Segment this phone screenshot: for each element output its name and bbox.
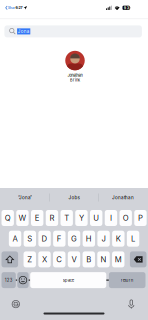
button[interactable]: D bbox=[38, 231, 51, 247]
staticText: D bbox=[42, 234, 48, 243]
staticText: R bbox=[49, 213, 54, 223]
staticText: Jona bbox=[18, 29, 30, 34]
button[interactable]: F bbox=[53, 231, 65, 247]
button[interactable]: W bbox=[16, 210, 29, 226]
button[interactable]: E bbox=[31, 210, 43, 226]
staticText: C bbox=[56, 255, 62, 264]
button[interactable]: Y bbox=[75, 210, 88, 226]
button[interactable]: N bbox=[97, 251, 110, 267]
button[interactable]: H bbox=[83, 231, 95, 247]
staticText: Jobs bbox=[68, 195, 79, 200]
staticText: G bbox=[71, 234, 77, 243]
staticText: N bbox=[100, 255, 106, 264]
button[interactable]: C bbox=[53, 251, 65, 267]
staticText: 123 bbox=[5, 277, 13, 283]
button[interactable]: A bbox=[9, 231, 21, 247]
staticText: 6:27 bbox=[15, 6, 22, 10]
button[interactable]: U bbox=[90, 210, 102, 226]
staticText: S bbox=[27, 234, 32, 243]
button[interactable]: G bbox=[68, 231, 80, 247]
button[interactable]: B bbox=[83, 251, 95, 267]
staticText: H bbox=[86, 234, 92, 243]
staticText: “Jona” bbox=[18, 195, 32, 200]
staticText: 93 bbox=[124, 5, 129, 10]
button[interactable]: Jonathan bbox=[53, 51, 97, 83]
staticText: Q bbox=[5, 213, 11, 223]
staticText: X bbox=[42, 255, 47, 264]
button[interactable]: R bbox=[46, 210, 58, 226]
button[interactable]: 123 bbox=[1, 272, 16, 288]
button[interactable]: I bbox=[105, 210, 117, 226]
button[interactable]: Q bbox=[1, 210, 14, 226]
staticText: Y bbox=[79, 213, 84, 223]
button[interactable]: J bbox=[97, 231, 110, 247]
button[interactable]: X bbox=[38, 251, 51, 267]
button[interactable]: Shar bbox=[5, 6, 15, 10]
button[interactable]: space bbox=[30, 272, 106, 288]
staticText: Brink bbox=[70, 78, 80, 83]
button[interactable]: “Jona” bbox=[1, 189, 49, 206]
button[interactable]: P bbox=[134, 210, 147, 226]
button[interactable]: V bbox=[68, 251, 80, 267]
staticText: P bbox=[138, 213, 143, 223]
button[interactable]: K bbox=[112, 231, 124, 247]
staticText: T bbox=[64, 213, 69, 223]
staticText: space bbox=[63, 277, 74, 283]
staticText: K bbox=[116, 234, 121, 243]
staticText: M bbox=[115, 255, 122, 264]
staticText: O bbox=[123, 213, 129, 223]
staticText: B bbox=[86, 255, 91, 264]
button[interactable]: S bbox=[24, 231, 36, 247]
staticText: Shar bbox=[8, 6, 15, 10]
staticText: J bbox=[102, 234, 106, 243]
staticText: return bbox=[121, 277, 134, 283]
button[interactable]: Jobs bbox=[50, 189, 98, 206]
staticText: Jonathan bbox=[112, 195, 134, 200]
button[interactable]: Emoji bbox=[17, 272, 29, 288]
button[interactable]: Z bbox=[24, 251, 36, 267]
staticText: Z bbox=[27, 255, 32, 264]
staticText: E bbox=[35, 213, 40, 223]
button[interactable]: M bbox=[112, 251, 124, 267]
button[interactable]: Delete bbox=[130, 251, 146, 267]
staticText: U bbox=[93, 213, 99, 223]
button[interactable]: Dictate bbox=[128, 299, 135, 309]
button[interactable]: Next keyboard bbox=[12, 300, 20, 308]
staticText: F bbox=[57, 234, 62, 243]
button[interactable]: return bbox=[109, 272, 145, 288]
staticText: Jonathan bbox=[67, 73, 82, 78]
staticText: I bbox=[110, 213, 112, 223]
staticText: L bbox=[131, 234, 135, 243]
button[interactable]: Jonathan bbox=[99, 189, 147, 206]
button[interactable]: Shift bbox=[1, 251, 18, 267]
button[interactable]: O bbox=[119, 210, 132, 226]
button[interactable]: T bbox=[60, 210, 73, 226]
staticText: W bbox=[18, 213, 26, 223]
staticText: A bbox=[13, 234, 18, 243]
staticText: V bbox=[71, 255, 76, 264]
button[interactable]: L bbox=[127, 231, 139, 247]
button[interactable]: Jona bbox=[4, 25, 142, 37]
